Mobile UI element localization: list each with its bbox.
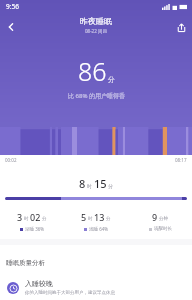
staticText: 清醒时长	[154, 226, 172, 232]
staticText: 02	[30, 211, 41, 223]
staticText: 深睡 36%	[25, 226, 45, 232]
staticText: 昨夜睡眠	[80, 16, 112, 26]
staticText: 8	[79, 176, 86, 191]
staticText: 9:56	[6, 2, 19, 11]
staticText: 5	[81, 211, 87, 223]
button[interactable]: 5	[64, 211, 128, 232]
staticText: 入睡较晚	[25, 279, 53, 288]
button[interactable]: 3	[0, 211, 64, 232]
staticText: 时	[88, 216, 93, 222]
button[interactable]: 入睡较晚	[0, 279, 192, 296]
staticText: 分	[42, 216, 47, 222]
staticText: 9	[152, 211, 158, 223]
staticText: 睡眠质量分析	[6, 259, 45, 267]
staticText: 13	[94, 211, 105, 223]
staticText: 86	[78, 54, 107, 88]
staticText: 浅睡 64%	[89, 226, 109, 232]
button[interactable]: Back	[2, 18, 20, 36]
staticText: 分	[106, 216, 111, 222]
staticText: 你的入睡时间晚于大部分用户，建议早点休息	[25, 290, 115, 296]
staticText: 时	[87, 183, 92, 189]
staticText: 15	[94, 176, 107, 191]
staticText: 08-22 周四	[85, 28, 107, 34]
staticText: 分	[108, 183, 113, 189]
staticText: 比 68% 的用户睡得香	[68, 92, 125, 100]
button[interactable]: Share	[172, 18, 190, 36]
staticText: 00:02	[5, 157, 17, 163]
staticText: 分	[108, 75, 115, 84]
staticText: 08:17	[175, 157, 187, 163]
button[interactable]: 9	[128, 211, 192, 232]
staticText: 时	[24, 216, 29, 222]
staticText: 3	[17, 211, 23, 223]
staticText: 分钟	[159, 216, 168, 222]
